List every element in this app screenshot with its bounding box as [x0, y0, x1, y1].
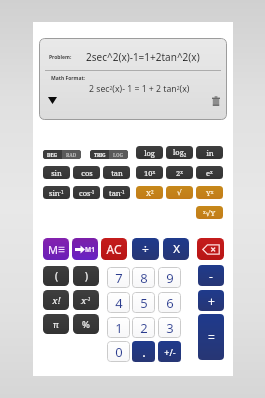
button[interactable]: .: [132, 341, 155, 362]
button[interactable]: 6: [158, 292, 181, 313]
button[interactable]: +: [198, 290, 224, 311]
button[interactable]: 4: [107, 292, 130, 313]
button[interactable]: x-1: [73, 290, 99, 310]
button[interactable]: tan-1: [103, 186, 130, 199]
staticText: 5: [140, 294, 148, 312]
button[interactable]: -: [198, 265, 224, 286]
button[interactable]: X2: [136, 186, 163, 199]
button[interactable]: Yx: [196, 186, 223, 199]
button[interactable]: Clear: [211, 96, 221, 106]
staticText: cos-1: [79, 188, 95, 198]
button[interactable]: 9: [158, 267, 181, 288]
staticText: M1: [85, 245, 95, 254]
button[interactable]: Problem:: [39, 38, 227, 120]
button[interactable]: tan: [103, 166, 130, 179]
staticText: X2: [146, 188, 154, 198]
button[interactable]: cos: [73, 166, 100, 179]
button[interactable]: cos-1: [73, 186, 100, 199]
staticText: =: [208, 329, 215, 345]
button[interactable]: 5: [132, 292, 155, 313]
staticText: 2: [140, 319, 148, 337]
staticText: RAD: [66, 152, 77, 158]
staticText: 4: [115, 294, 123, 312]
staticText: cos: [81, 168, 93, 178]
staticText: 7: [115, 269, 123, 287]
staticText: log: [144, 148, 155, 158]
button[interactable]: 10x: [136, 166, 163, 179]
button[interactable]: (: [43, 266, 69, 286]
staticText: x!: [52, 294, 61, 307]
staticText: Math Format:: [51, 75, 85, 82]
staticText: 8: [140, 269, 148, 287]
button[interactable]: X: [163, 238, 189, 260]
button[interactable]: x!: [43, 290, 69, 310]
staticText: tan: [111, 168, 123, 178]
button[interactable]: 2: [132, 317, 155, 338]
staticText: .: [142, 343, 146, 361]
button[interactable]: x√Y: [196, 206, 223, 219]
button[interactable]: log2: [166, 146, 193, 159]
staticText: 2sec^2(x)-1=1+2tan^2(x): [86, 50, 200, 64]
staticText: 9: [166, 269, 174, 287]
button[interactable]: 7: [107, 267, 130, 288]
staticText: tan-1: [109, 188, 125, 198]
button[interactable]: TRIG: [90, 150, 128, 159]
button[interactable]: sin-1: [43, 186, 70, 199]
staticText: (: [55, 269, 58, 283]
staticText: LOG: [113, 152, 124, 158]
staticText: ex: [206, 168, 213, 178]
button[interactable]: +/-: [158, 341, 181, 362]
staticText: 2x: [176, 168, 183, 178]
staticText: in: [206, 148, 214, 158]
button[interactable]: Show history: [48, 97, 57, 104]
button[interactable]: 8: [132, 267, 155, 288]
staticText: 6: [166, 294, 174, 312]
staticText: 3: [166, 319, 174, 337]
staticText: %: [82, 318, 90, 331]
staticText: log2: [173, 147, 187, 159]
button[interactable]: π: [43, 314, 69, 334]
button[interactable]: Backspace: [197, 238, 224, 260]
staticText: X: [173, 241, 180, 257]
button[interactable]: 2x: [166, 166, 193, 179]
staticText: +/-: [164, 346, 176, 358]
staticText: 0: [115, 343, 123, 361]
button[interactable]: ): [73, 266, 99, 286]
staticText: 2 sec2(x)- 1 = 1 + 2 tan2(x): [89, 83, 190, 95]
staticText: M: [48, 242, 58, 257]
button[interactable]: ex: [196, 166, 223, 179]
staticText: -: [209, 268, 213, 284]
staticText: x√Y: [203, 208, 216, 218]
staticText: 10x: [144, 168, 156, 178]
staticText: ): [85, 269, 88, 283]
staticText: x-1: [81, 294, 91, 307]
button[interactable]: 3: [158, 317, 181, 338]
button[interactable]: sin: [43, 166, 70, 179]
staticText: +: [208, 293, 215, 309]
button[interactable]: log: [136, 146, 163, 159]
button[interactable]: AC: [101, 238, 127, 260]
button[interactable]: M: [43, 238, 69, 260]
staticText: π: [53, 318, 59, 330]
staticText: Problem:: [49, 54, 72, 61]
button[interactable]: 0: [107, 341, 130, 362]
staticText: TRIG: [94, 152, 106, 158]
button[interactable]: M1: [72, 238, 98, 260]
other: Backspace: [202, 244, 220, 255]
button[interactable]: √: [166, 186, 193, 199]
button[interactable]: ÷: [132, 238, 159, 260]
staticText: 1: [115, 319, 123, 337]
staticText: AC: [106, 241, 122, 257]
button[interactable]: DEG: [43, 150, 81, 159]
staticText: ÷: [142, 241, 149, 257]
button[interactable]: in: [196, 146, 223, 159]
button[interactable]: =: [198, 314, 224, 360]
button[interactable]: 1: [107, 317, 130, 338]
button[interactable]: %: [73, 314, 99, 334]
staticText: DEG: [47, 152, 58, 158]
staticText: sin-1: [49, 188, 64, 198]
staticText: √: [177, 188, 182, 197]
staticText: sin: [51, 168, 62, 178]
staticText: Yx: [206, 188, 214, 198]
